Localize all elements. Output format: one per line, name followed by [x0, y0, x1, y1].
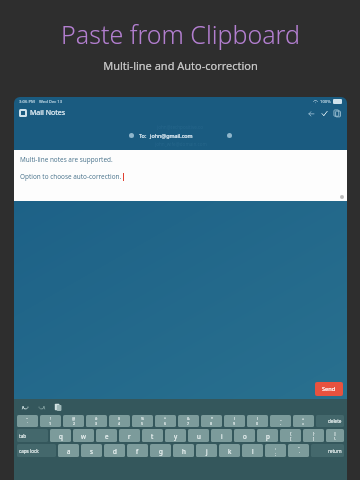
button[interactable]: &: [178, 415, 199, 427]
staticText: ': [299, 451, 300, 456]
button[interactable]: t: [142, 429, 163, 442]
button[interactable]: f: [127, 444, 148, 457]
button[interactable]: ": [288, 444, 309, 457]
staticText: i: [221, 432, 223, 440]
staticText: 4: [118, 421, 121, 426]
button[interactable]: Send: [315, 382, 343, 396]
staticText: 2: [73, 421, 76, 426]
staticText: To:: [139, 132, 147, 139]
staticText: ]: [313, 436, 315, 441]
button[interactable]: {: [280, 429, 301, 442]
button[interactable]: $: [109, 415, 130, 427]
staticText: }: [313, 431, 315, 436]
staticText: s: [90, 447, 93, 455]
staticText: r: [128, 432, 131, 440]
button[interactable]: :: [265, 444, 286, 457]
button[interactable]: h: [173, 444, 194, 457]
staticText: o: [243, 432, 247, 440]
button[interactable]: a: [58, 444, 79, 457]
staticText: +: [302, 416, 305, 421]
button[interactable]: Paste: [52, 401, 63, 412]
button[interactable]: j: [196, 444, 217, 457]
button[interactable]: return: [311, 444, 344, 457]
staticText: |: [334, 431, 336, 436]
staticText: 100%: [320, 99, 331, 105]
button[interactable]: r: [119, 429, 140, 442]
staticText: john@gmail.com: [150, 132, 193, 139]
staticText: {: [290, 431, 292, 436]
button[interactable]: App icon: [19, 109, 27, 117]
staticText: caps lock: [19, 448, 39, 454]
button[interactable]: Undo: [20, 401, 31, 412]
button[interactable]: Clear: [340, 195, 344, 199]
staticText: Multi-line notes are supported.: [20, 155, 113, 164]
button[interactable]: Multi-line notes are supported.: [14, 150, 347, 201]
button[interactable]: Done: [319, 108, 329, 118]
button[interactable]: k: [219, 444, 240, 457]
button[interactable]: ^: [155, 415, 176, 427]
staticText: p: [266, 432, 270, 440]
button[interactable]: l: [242, 444, 263, 457]
staticText: g: [159, 447, 163, 455]
staticText: 6: [164, 421, 167, 426]
staticText: e: [105, 432, 109, 440]
button[interactable]: }: [303, 429, 324, 442]
button[interactable]: ): [247, 415, 268, 427]
button[interactable]: caps lock: [17, 444, 56, 457]
button[interactable]: o: [234, 429, 255, 442]
staticText: t: [151, 432, 154, 440]
staticText: &: [187, 416, 190, 421]
staticText: j: [206, 447, 208, 455]
button[interactable]: Undo: [306, 108, 316, 118]
button[interactable]: w: [73, 429, 94, 442]
button[interactable]: _: [270, 415, 291, 427]
staticText: ): [257, 416, 259, 421]
staticText: 5: [141, 421, 144, 426]
staticText: @: [72, 416, 76, 421]
button[interactable]: Next: [227, 133, 232, 138]
staticText: ": [298, 446, 300, 451]
staticText: Paste from Clipboard: [61, 17, 300, 51]
button[interactable]: i: [211, 429, 232, 442]
button[interactable]: +: [293, 415, 314, 427]
staticText: [: [290, 436, 292, 441]
staticText: 1: [49, 421, 52, 426]
button[interactable]: y: [165, 429, 186, 442]
button[interactable]: g: [150, 444, 171, 457]
button[interactable]: d: [104, 444, 125, 457]
button[interactable]: #: [86, 415, 107, 427]
button[interactable]: ~: [17, 415, 38, 427]
staticText: tab: [19, 433, 27, 439]
button[interactable]: s: [81, 444, 102, 457]
button[interactable]: q: [50, 429, 71, 442]
button[interactable]: p: [257, 429, 278, 442]
staticText: 7: [187, 421, 190, 426]
button[interactable]: delete: [316, 415, 344, 427]
staticText: d: [113, 447, 117, 455]
button[interactable]: u: [188, 429, 209, 442]
staticText: 8: [210, 421, 213, 426]
button[interactable]: *: [201, 415, 222, 427]
staticText: a: [67, 447, 71, 455]
staticText: w: [81, 432, 86, 440]
staticText: ;: [275, 451, 276, 456]
button[interactable]: Paste: [332, 108, 342, 118]
staticText: =: [302, 421, 305, 426]
button[interactable]: !: [40, 415, 61, 427]
button[interactable]: (: [224, 415, 245, 427]
button[interactable]: %: [132, 415, 153, 427]
staticText: k: [228, 447, 232, 455]
button[interactable]: Redo: [36, 401, 47, 412]
staticText: 3:06 PM: [19, 99, 35, 105]
button[interactable]: tab: [17, 429, 48, 442]
staticText: Wed Dec 13: [39, 99, 63, 105]
staticText: ~: [26, 416, 29, 421]
staticText: 9: [233, 421, 236, 426]
button[interactable]: Previous: [129, 133, 134, 138]
button[interactable]: @: [63, 415, 84, 427]
button[interactable]: |: [326, 429, 344, 442]
button[interactable]: e: [96, 429, 117, 442]
staticText: 3: [95, 421, 98, 426]
